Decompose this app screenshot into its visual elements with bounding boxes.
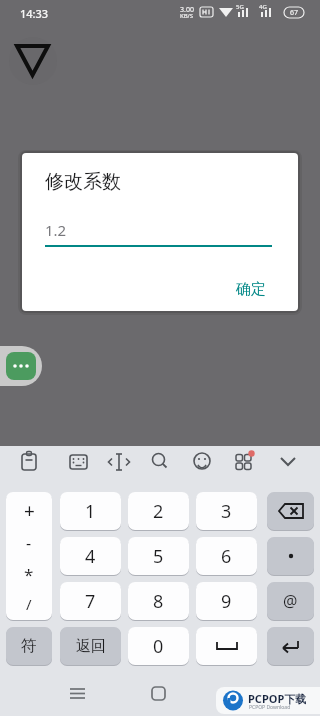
button[interactable]: + xyxy=(6,492,52,620)
button[interactable]: 8 xyxy=(128,582,189,620)
button[interactable] xyxy=(9,448,49,488)
button[interactable]: 1 xyxy=(60,492,121,530)
staticText: * xyxy=(24,563,34,586)
staticText: 2 xyxy=(153,499,164,524)
button[interactable]: 7 xyxy=(60,582,121,620)
button[interactable] xyxy=(267,537,314,575)
staticText: KB/S xyxy=(180,12,194,20)
staticText: 9 xyxy=(221,589,232,614)
button[interactable] xyxy=(99,448,139,488)
staticText: 4 xyxy=(85,544,96,569)
button[interactable]: 5 xyxy=(128,537,189,575)
staticText: 修改系数 xyxy=(45,170,121,194)
button[interactable]: @ xyxy=(267,582,314,620)
button[interactable] xyxy=(182,448,222,488)
button[interactable] xyxy=(140,448,180,488)
staticText: @ xyxy=(283,590,298,612)
button[interactable]: 3 xyxy=(196,492,257,530)
staticText: 14:33 xyxy=(20,6,49,21)
button[interactable]: 6 xyxy=(196,537,257,575)
staticText: 7 xyxy=(85,589,96,614)
staticText: / xyxy=(26,594,32,614)
button[interactable] xyxy=(0,346,42,386)
staticText: 1 xyxy=(85,499,96,524)
button[interactable]: 2 xyxy=(128,492,189,530)
staticText: 符 xyxy=(21,636,37,656)
button[interactable] xyxy=(268,448,308,488)
staticText: 1.2 xyxy=(45,220,67,240)
button[interactable]: PCPOP下载 xyxy=(216,687,320,714)
staticText: 8 xyxy=(153,589,164,614)
staticText: + xyxy=(24,498,35,524)
staticText: 67 xyxy=(290,8,299,18)
button[interactable]: 返回 xyxy=(60,627,121,665)
staticText: 3 xyxy=(221,499,232,524)
button[interactable]: 符 xyxy=(6,627,52,665)
button[interactable]: 1.2 xyxy=(45,213,272,247)
staticText: 确定 xyxy=(236,280,266,299)
button[interactable]: 0 xyxy=(128,627,189,665)
button[interactable] xyxy=(196,627,257,665)
staticText: 4G xyxy=(259,3,267,11)
staticText: 6 xyxy=(221,544,232,569)
button[interactable] xyxy=(58,448,98,488)
staticText: - xyxy=(26,532,32,554)
staticText: 5G xyxy=(236,3,244,11)
staticText: 5 xyxy=(153,544,164,569)
button[interactable] xyxy=(267,492,314,530)
staticText: PCPOP下载 xyxy=(248,691,307,706)
staticText: 0 xyxy=(153,634,164,659)
button[interactable] xyxy=(58,674,98,710)
button[interactable]: 9 xyxy=(196,582,257,620)
staticText: PCPOP Download xyxy=(249,704,291,711)
button[interactable] xyxy=(267,627,314,665)
staticText: 返回 xyxy=(76,637,106,656)
button[interactable]: 4 xyxy=(60,537,121,575)
button[interactable] xyxy=(139,674,179,710)
button[interactable] xyxy=(224,448,264,488)
staticText: 3.00 xyxy=(180,5,194,15)
button[interactable]: 确定 xyxy=(219,271,283,307)
button[interactable] xyxy=(8,37,60,87)
